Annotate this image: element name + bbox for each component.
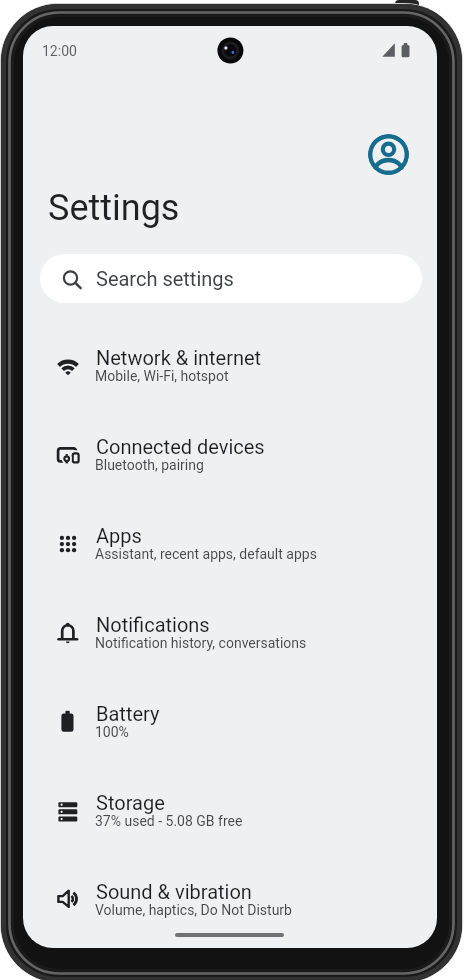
button[interactable]: Notifications (23, 590, 437, 679)
button[interactable]: Network & internet (23, 323, 437, 412)
staticText: Sound & vibration (96, 880, 252, 903)
staticText: Volume, haptics, Do Not Disturb (95, 902, 292, 918)
staticText: Storage (96, 791, 165, 814)
staticText: 37% used - 5.08 GB free (95, 813, 243, 829)
staticText: Connected devices (96, 435, 265, 458)
staticText: Settings (48, 187, 180, 229)
staticText: Notification history, conversations (95, 635, 307, 651)
button[interactable]: Connected devices (23, 412, 437, 501)
staticText: Bluetooth, pairing (95, 457, 204, 473)
staticText: Mobile, Wi-Fi, hotspot (95, 368, 229, 384)
staticText: 12:00 (42, 43, 77, 59)
button[interactable]: Storage (23, 768, 437, 857)
button[interactable]: Battery (23, 679, 437, 768)
staticText: Notifications (96, 613, 210, 636)
button[interactable]: Sound & vibration (23, 857, 437, 946)
staticText: Network & internet (96, 346, 262, 369)
staticText: Assistant, recent apps, default apps (95, 546, 317, 562)
staticText: Battery (96, 702, 160, 725)
button[interactable] (368, 134, 409, 175)
button[interactable]: Apps (23, 501, 437, 590)
staticText: 100% (95, 724, 129, 740)
staticText: Apps (96, 524, 142, 547)
staticText: Search settings (96, 267, 234, 290)
button[interactable]: Search settings (40, 254, 422, 303)
